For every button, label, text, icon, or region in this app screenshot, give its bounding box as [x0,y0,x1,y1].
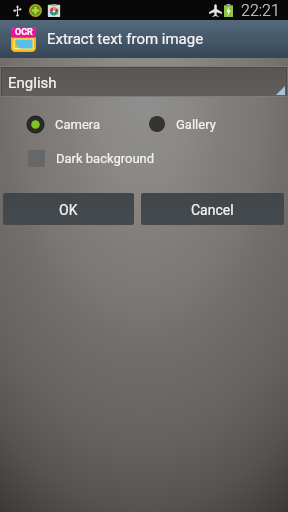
staticText: English [8,74,57,92]
staticText: OCR [15,27,33,38]
button[interactable]: OK [3,193,134,225]
staticText: 22:21 [241,1,280,20]
staticText: Dark background [56,151,155,166]
button[interactable]: Gallery [149,116,216,132]
staticText: OK [59,202,78,218]
button[interactable]: Cancel [141,193,284,225]
staticText: Cancel [191,202,234,218]
staticText: Gallery [176,117,216,132]
staticText: Camera [55,117,101,132]
button[interactable]: Camera [27,116,101,133]
staticText: Extract text from image [47,30,204,48]
button[interactable]: Dark background [28,149,155,167]
button[interactable]: Language English [1,66,287,97]
